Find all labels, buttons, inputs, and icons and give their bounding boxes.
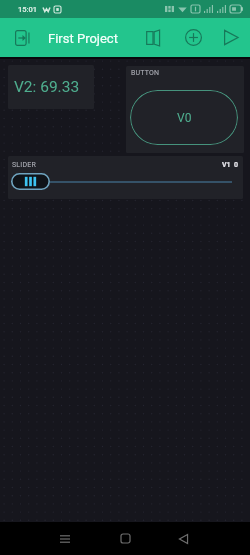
button[interactable]: Recent apps <box>45 522 85 555</box>
button[interactable]: Home <box>105 522 145 555</box>
button[interactable]: Slider value <box>11 173 50 190</box>
button[interactable]: Back <box>163 522 203 555</box>
staticText: V1 0 <box>222 161 239 169</box>
staticText: V2: 69.33 <box>14 78 80 96</box>
button[interactable]: V2: 69.33 <box>8 65 94 109</box>
button[interactable]: Add widget <box>174 18 213 57</box>
button[interactable]: Play <box>213 18 249 57</box>
button[interactable]: Exit project <box>0 18 44 57</box>
staticText: V0 <box>177 111 192 125</box>
staticText: SLIDER <box>12 161 36 169</box>
staticText: First Project <box>48 31 118 46</box>
button[interactable]: V0 <box>130 90 238 145</box>
button[interactable]: Clone project <box>132 18 174 57</box>
staticText: BUTTON <box>131 69 160 77</box>
staticText: 15:01 <box>18 5 38 14</box>
